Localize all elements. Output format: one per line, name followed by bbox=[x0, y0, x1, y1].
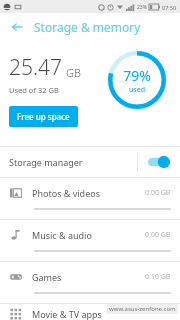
staticText: 23% bbox=[137, 4, 147, 11]
staticText: 79% bbox=[123, 66, 151, 85]
button[interactable]: Back bbox=[6, 16, 28, 38]
staticText: 25.47 bbox=[9, 53, 63, 82]
staticText: Music & audio bbox=[32, 229, 92, 241]
staticText: 0.00 GB bbox=[145, 230, 171, 240]
button[interactable]: Photos & videos bbox=[0, 178, 180, 220]
staticText: Movie & TV apps bbox=[32, 308, 102, 320]
staticText: Storage manager bbox=[9, 156, 83, 168]
staticText: used bbox=[129, 85, 145, 95]
staticText: 07:50 bbox=[162, 4, 177, 11]
button[interactable]: Storage manager toggle bbox=[148, 155, 170, 169]
button[interactable]: Music & audio bbox=[0, 220, 180, 262]
button[interactable]: Storage manager bbox=[0, 147, 180, 177]
staticText: GB bbox=[66, 65, 81, 80]
staticText: 0.00 GB bbox=[145, 188, 171, 198]
staticText: Games bbox=[32, 271, 62, 283]
staticText: 0.10 GB bbox=[145, 272, 171, 282]
staticText: Storage & memory bbox=[34, 19, 141, 35]
staticText: Free up space bbox=[17, 111, 70, 122]
button[interactable]: Free up space bbox=[9, 106, 78, 127]
staticText: www.asus-zenfone.com bbox=[109, 305, 176, 313]
button[interactable]: Games bbox=[0, 262, 180, 304]
button[interactable]: Movie & TV apps bbox=[0, 304, 180, 320]
staticText: Used of 32 GB bbox=[9, 85, 59, 95]
staticText: Photos & videos bbox=[32, 187, 100, 199]
